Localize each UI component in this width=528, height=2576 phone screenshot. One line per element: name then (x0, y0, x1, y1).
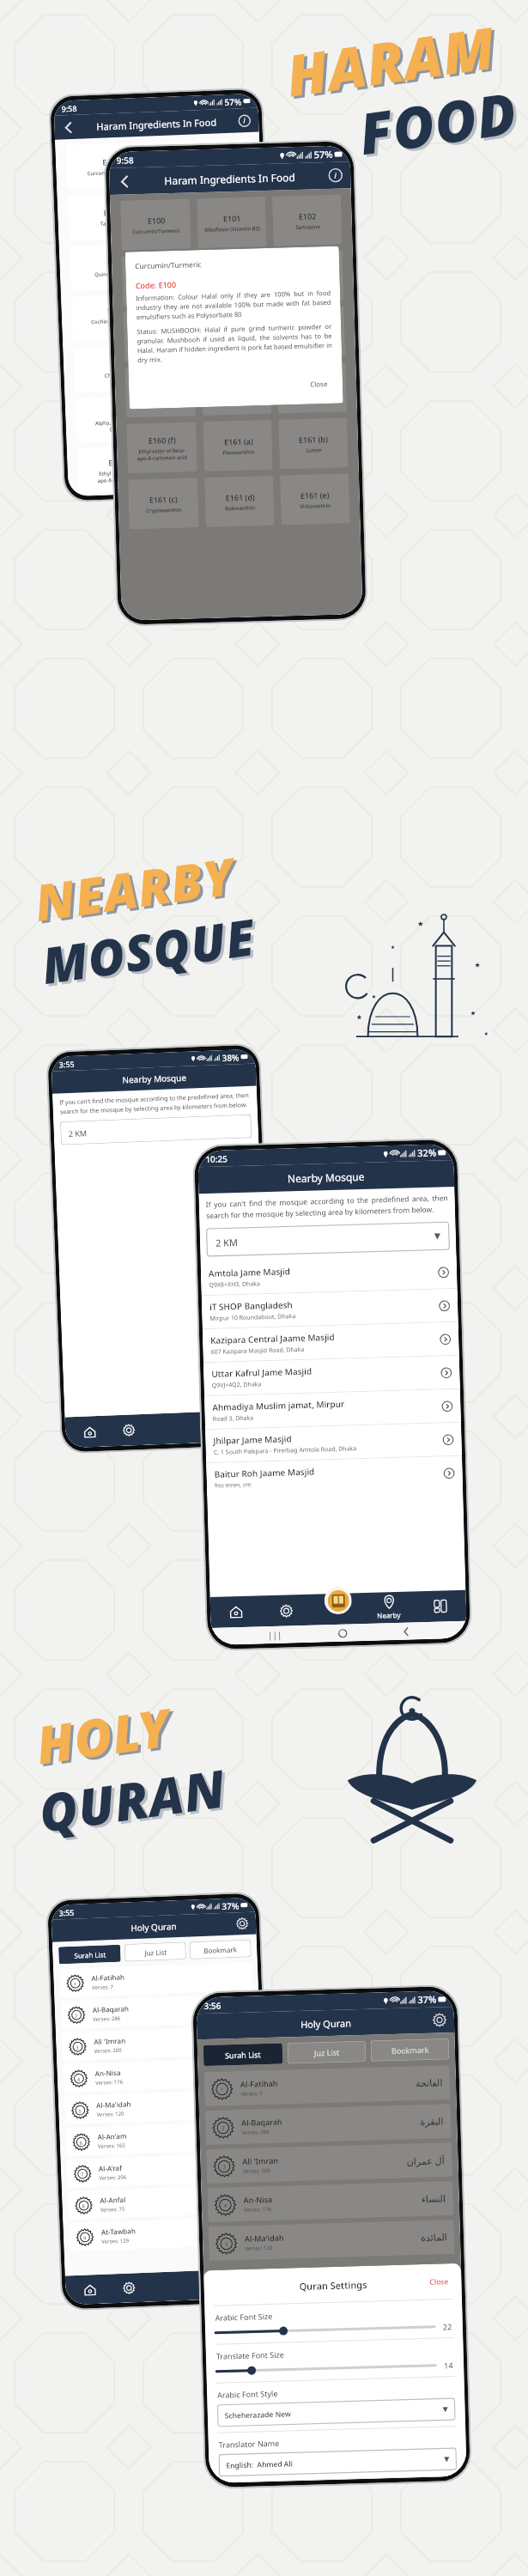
button[interactable]: E160 (f) (77, 446, 167, 494)
button[interactable]: Tasbih (261, 1594, 312, 1627)
button[interactable]: Bookmark (371, 2039, 449, 2061)
button[interactable]: 8 (68, 2184, 261, 2220)
button[interactable]: Info (238, 114, 251, 128)
button[interactable]: English: Ahmed Ali (219, 2448, 456, 2476)
button[interactable]: E101 (197, 197, 267, 248)
button[interactable]: E100 (120, 199, 191, 250)
button[interactable]: E104 (69, 243, 159, 291)
button[interactable]: Home (210, 1596, 261, 1628)
button[interactable]: Ahmadiya Muslim jamat, Mirpur (204, 1389, 461, 1429)
button[interactable]: iT SHOP Bangladesh (201, 1289, 458, 1329)
button[interactable]: Uttar Kafrul Jame Masjid (203, 1356, 460, 1396)
button[interactable]: Nearby (363, 1591, 415, 1624)
button[interactable]: Kazipara Central Jaame Masjid (202, 1322, 459, 1362)
button[interactable]: E160 (e) (277, 362, 347, 414)
staticText: Juz List (314, 2047, 340, 2058)
button[interactable]: 1 (204, 2065, 450, 2106)
button[interactable]: E161 (d) (204, 476, 274, 527)
button[interactable]: Surah List (203, 2043, 283, 2066)
staticText: FOOD (357, 75, 524, 173)
button[interactable]: 2 KM (60, 1114, 252, 1145)
staticText: If you can't find the mosque according t… (59, 1091, 251, 1116)
button[interactable]: E102 (67, 193, 157, 241)
button[interactable]: E102 (272, 194, 342, 246)
staticText: E161 (e) (300, 489, 330, 501)
button[interactable]: E161 (c) (128, 478, 199, 529)
button[interactable]: 7 (67, 2152, 260, 2188)
button[interactable]: E101 (161, 138, 251, 186)
staticText: Verses: 120 (245, 2244, 272, 2252)
staticText: Chlorophyll (104, 371, 133, 379)
button[interactable]: E103 (163, 189, 253, 237)
button[interactable]: Baitur Roh Jaame Masjid (206, 1456, 463, 1496)
button[interactable]: E160 (f) (126, 422, 197, 474)
button[interactable]: E161 (a) (203, 420, 273, 471)
button[interactable]: Settings (236, 1917, 248, 1930)
button[interactable]: 6 (65, 2121, 259, 2156)
button[interactable]: Close (305, 376, 333, 391)
button[interactable]: Settings (123, 2282, 135, 2294)
button[interactable]: E103 (122, 255, 193, 306)
button[interactable]: Back (61, 120, 76, 135)
staticText: Information: Colour Halal only if they a… (136, 288, 331, 321)
staticText: Ahmadiya Muslim jamat, Mirpur (212, 1398, 345, 1413)
button[interactable]: Amtola Jame Masjid (201, 1255, 457, 1295)
button[interactable]: 2 KM (207, 1222, 449, 1256)
button[interactable]: Jhilpar Jame Masjid (205, 1423, 462, 1462)
button[interactable]: E160 (e) (170, 391, 260, 439)
button[interactable]: E132 (200, 308, 270, 360)
button[interactable]: Back (116, 173, 133, 190)
button[interactable]: Settings (123, 1424, 135, 1436)
button[interactable]: E160 (75, 395, 165, 443)
button[interactable]: Juz List (287, 2041, 366, 2064)
staticText: 607 Kazipara Masjid Road, Dhaka (211, 1345, 304, 1357)
button[interactable]: 4 (63, 2057, 256, 2093)
button[interactable]: 3 (206, 2142, 453, 2184)
other: Open (439, 1300, 450, 1312)
button[interactable]: E110 (274, 250, 344, 302)
button[interactable]: E140 (275, 306, 345, 358)
button[interactable]: 9 (69, 2216, 262, 2252)
button[interactable]: 1 (59, 1962, 252, 1998)
staticText: 9:58 (116, 154, 134, 166)
staticText: Al-Baqarah (241, 2116, 283, 2128)
button[interactable]: Bookmark (190, 1940, 251, 1959)
button[interactable]: E132 (166, 290, 257, 338)
button[interactable]: 2 (60, 1994, 254, 2029)
button[interactable]: E161 (e) (280, 473, 350, 525)
button[interactable]: E120 (71, 294, 161, 342)
button[interactable] (215, 2322, 435, 2338)
button[interactable]: E100 (65, 142, 155, 190)
button[interactable]: Quran (324, 1586, 352, 1615)
button[interactable]: E110 (165, 239, 255, 287)
staticText: E120 (107, 305, 125, 316)
button[interactable]: Settings (433, 2013, 447, 2027)
button[interactable]: E104 (198, 252, 268, 304)
button[interactable]: 5 (208, 2220, 455, 2261)
button[interactable]: Info (328, 168, 343, 183)
button[interactable]: Juz List (124, 1942, 186, 1962)
staticText: Rubixanthin (225, 504, 255, 512)
button[interactable]: Settings (280, 1604, 293, 1618)
staticText: E100 (102, 156, 120, 167)
button[interactable]: E160 (201, 364, 271, 416)
staticText: QURAN (38, 1754, 234, 1850)
button[interactable]: 3 (62, 2025, 255, 2061)
button[interactable]: Surah List (58, 1945, 121, 1964)
button[interactable]: 4 (207, 2181, 454, 2222)
button[interactable]: E141 (125, 366, 196, 418)
button[interactable] (217, 2360, 436, 2377)
button[interactable]: Close (427, 2275, 451, 2289)
button[interactable]: Scheherazade New (218, 2398, 455, 2426)
button[interactable]: 5 (64, 2089, 257, 2125)
button[interactable]: More (414, 1590, 467, 1622)
staticText: Kazipara Central Jaame Masjid (210, 1331, 335, 1346)
button[interactable]: 2 (205, 2104, 451, 2145)
staticText: Al-Ma'idah (245, 2232, 284, 2244)
button[interactable]: E140 (73, 344, 163, 392)
button[interactable]: E141 (168, 341, 259, 389)
button[interactable]: E161 (a) (172, 442, 262, 490)
button[interactable]: E120 (123, 310, 194, 362)
button[interactable]: E161 (b) (278, 418, 348, 469)
